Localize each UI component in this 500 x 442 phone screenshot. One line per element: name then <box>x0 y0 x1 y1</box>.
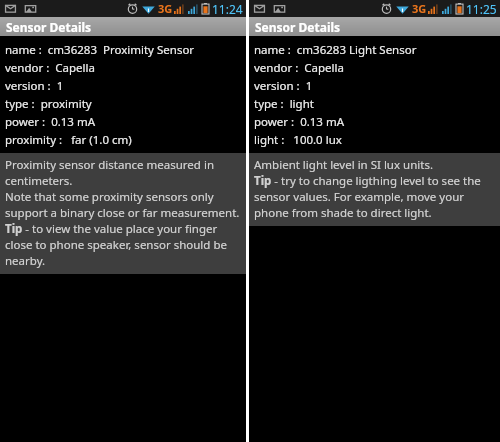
staticText: power : 0.13 mA <box>5 114 96 130</box>
staticText: 11:24 <box>212 1 243 17</box>
staticText: Sensor Details <box>6 19 92 35</box>
button[interactable]: Sensor Details <box>0 17 246 36</box>
staticText: Sensor Details <box>255 19 341 35</box>
staticText: 3G <box>412 1 427 16</box>
staticText: version : 1 <box>5 78 64 94</box>
staticText: version : 1 <box>254 78 313 94</box>
staticText: type : light <box>254 96 314 112</box>
staticText: 3G <box>158 1 173 16</box>
staticText: power : 0.13 mA <box>254 114 345 130</box>
button[interactable]: Sensor Details <box>249 17 500 36</box>
button[interactable]: Screenshot notification <box>273 2 286 15</box>
staticText: proximity : far (1.0 cm) <box>5 132 132 148</box>
staticText: name : cm36283 Light Sensor <box>254 42 417 58</box>
button[interactable]: Email notification <box>4 2 17 15</box>
button[interactable]: Screenshot notification <box>24 2 37 15</box>
staticText: light : 100.0 lux <box>254 132 342 148</box>
staticText: Proximity sensor distance measured in ce… <box>5 157 242 269</box>
staticText: 11:25 <box>466 1 497 17</box>
button[interactable]: Email notification <box>253 2 266 15</box>
staticText: name : cm36283 Proximity Sensor <box>5 42 195 58</box>
staticText: vendor : Capella <box>254 60 344 76</box>
staticText: Ambient light level in SI lux units. Tip… <box>254 157 496 221</box>
staticText: type : proximity <box>5 96 92 112</box>
staticText: vendor : Capella <box>5 60 95 76</box>
